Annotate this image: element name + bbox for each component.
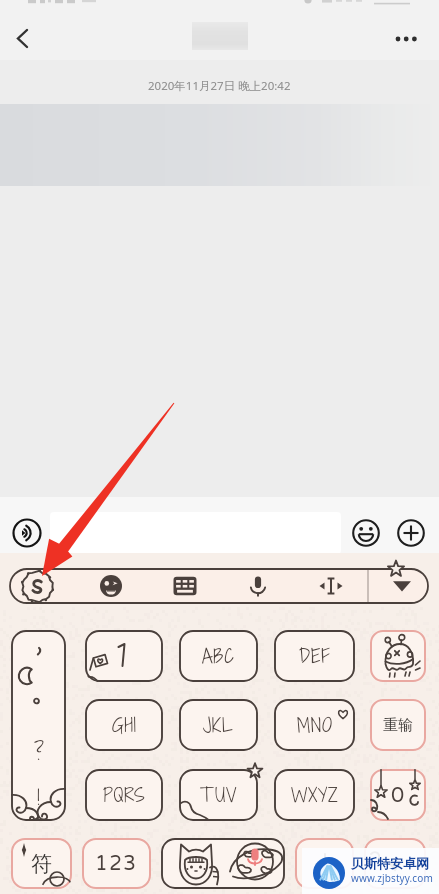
staticText: MNO: [297, 712, 333, 738]
staticText: JKL: [203, 712, 234, 738]
button[interactable]: Sogou input method: [7, 568, 67, 604]
button[interactable]: Move cursor: [301, 568, 361, 604]
staticText: ?: [34, 738, 44, 767]
button[interactable]: Key 0: [370, 769, 426, 821]
staticText: 贝斯特安卓网: [351, 855, 429, 871]
button[interactable]: Hide keyboard: [364, 838, 426, 889]
button[interactable]: Enter: [295, 838, 354, 889]
button[interactable]: Key PQRS: [85, 769, 163, 821]
button[interactable]: Watermark logo: [313, 857, 345, 889]
button[interactable]: Key ABC: [179, 630, 258, 682]
button[interactable]: Key 1: [85, 630, 163, 682]
staticText: !: [37, 783, 40, 811]
staticText: WXYZ: [291, 782, 339, 808]
staticText: TUV: [200, 782, 238, 808]
button[interactable]: More actions: [391, 513, 431, 553]
button[interactable]: Key WXYZ: [274, 769, 355, 821]
button[interactable]: [50, 512, 341, 554]
button[interactable]: Key GHI: [85, 699, 163, 751]
staticText: GHI: [112, 712, 137, 738]
button[interactable]: Key MNO: [274, 699, 355, 751]
staticText: PQRS: [103, 782, 146, 808]
staticText: ABC: [202, 643, 235, 669]
button[interactable]: Numbers: [82, 838, 151, 889]
staticText: 重输: [383, 716, 413, 735]
button[interactable]: Voice input: [228, 568, 288, 604]
button[interactable]: Voice input: [7, 513, 47, 553]
button[interactable]: Hide keyboard: [372, 568, 432, 604]
button[interactable]: Delete: [370, 630, 426, 682]
staticText: DEF: [299, 643, 331, 669]
button[interactable]: More options: [384, 14, 428, 58]
staticText: 123: [95, 852, 138, 876]
button[interactable]: Keyboard layout: [155, 568, 215, 604]
button[interactable]: Key TUV: [179, 769, 258, 821]
button[interactable]: Punctuation: [11, 630, 66, 821]
staticText: 符: [31, 851, 52, 877]
button[interactable]: Symbols: [11, 838, 72, 889]
staticText: www.zjbstyy.com: [351, 871, 433, 885]
staticText: 0: [391, 783, 405, 808]
button[interactable]: Back: [4, 14, 48, 58]
staticText: 2020年11月27日 晚上20:42: [148, 78, 291, 94]
button[interactable]: Emoji: [346, 513, 386, 553]
button[interactable]: Key DEF: [274, 630, 355, 682]
button[interactable]: Re-enter: [370, 699, 426, 751]
button[interactable]: Key JKL: [179, 699, 258, 751]
button[interactable]: Emoticons: [81, 568, 141, 604]
button[interactable]: Space: [161, 838, 285, 889]
